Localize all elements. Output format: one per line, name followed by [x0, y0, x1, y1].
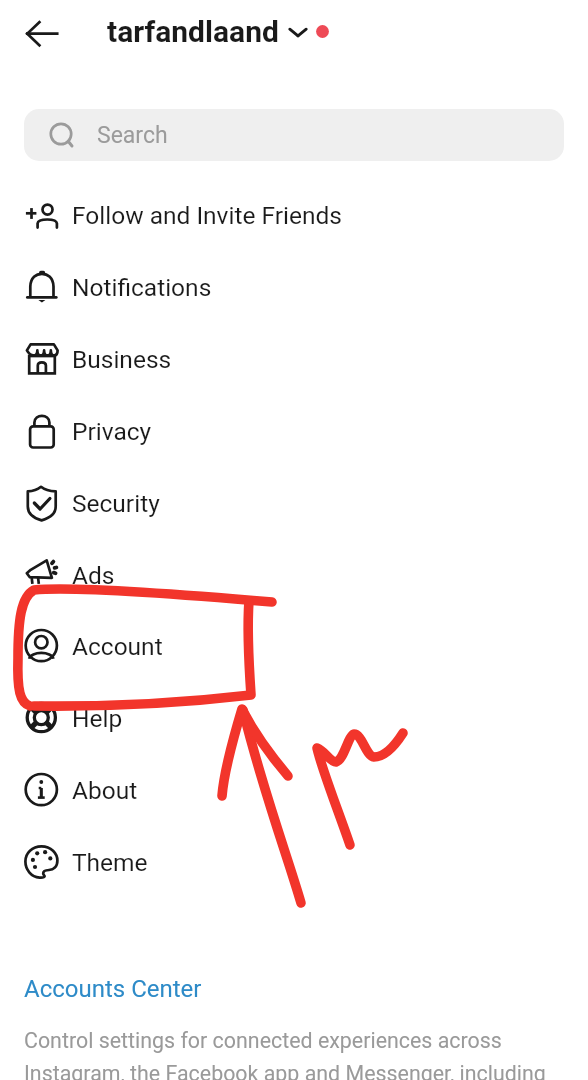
staticText: Search	[97, 122, 168, 149]
button[interactable]: Follow and Invite Friends	[0, 179, 588, 251]
staticText: Privacy	[72, 417, 152, 446]
button[interactable]: Privacy	[0, 395, 588, 467]
staticText: Help	[72, 704, 123, 733]
button[interactable]: Accounts Center	[24, 975, 202, 1003]
button[interactable]: Account	[0, 610, 588, 682]
button[interactable]: Business	[0, 323, 588, 395]
button[interactable]: About	[0, 754, 588, 826]
button[interactable]: Search	[24, 109, 564, 161]
staticText: Notifications	[72, 273, 212, 302]
staticText: Business	[72, 345, 172, 374]
button[interactable]: Security	[0, 467, 588, 539]
staticText: Control settings for connected experienc…	[24, 1028, 572, 1080]
button[interactable]: Theme	[0, 826, 588, 898]
button[interactable]: tarfandlaand	[107, 9, 329, 54]
button[interactable]: Notifications	[0, 251, 588, 323]
button[interactable]: Help	[0, 682, 588, 754]
button[interactable]: Ads	[0, 539, 588, 611]
staticText: tarfandlaand	[107, 14, 279, 49]
staticText: Security	[72, 489, 160, 518]
button[interactable]: Back	[8, 8, 60, 60]
staticText: Ads	[72, 561, 115, 590]
staticText: Theme	[72, 848, 148, 877]
staticText: About	[72, 776, 138, 805]
staticText: Follow and Invite Friends	[72, 201, 342, 230]
staticText: Accounts Center	[24, 975, 202, 1003]
staticText: Account	[72, 632, 163, 661]
